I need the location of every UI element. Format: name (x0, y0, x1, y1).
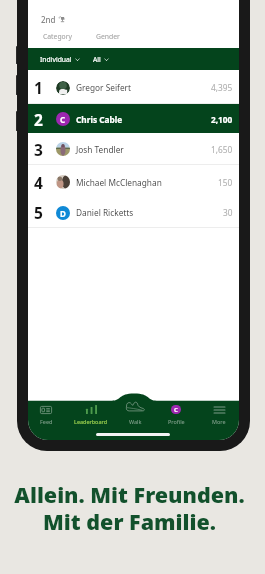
staticText: Daniel Ricketts (76, 207, 134, 218)
button[interactable]: More (198, 395, 239, 440)
staticText: 30 (223, 207, 233, 218)
staticText: Mit der Familie. (43, 507, 216, 536)
staticText: Profile (168, 418, 185, 425)
button[interactable]: Gender (96, 32, 120, 41)
other: Walk (126, 402, 145, 411)
other: More (214, 406, 225, 414)
button[interactable]: Profile (155, 395, 197, 440)
button[interactable]: 5 (28, 197, 239, 228)
other: Leaderboard (86, 405, 97, 414)
staticText: Walk (129, 418, 142, 425)
button[interactable]: Feed (28, 395, 67, 440)
staticText: 4,395 (211, 82, 233, 93)
staticText: 3 (34, 139, 43, 160)
staticText: More (212, 418, 226, 425)
button[interactable]: Individual (40, 55, 80, 64)
staticText: C (174, 406, 178, 414)
staticText: Chris Cable (76, 114, 123, 125)
other: Profile (171, 405, 181, 414)
staticText: Feed (40, 418, 53, 425)
other: Feed (40, 406, 52, 414)
staticText: 2,100 (211, 114, 233, 125)
staticText: 5 (34, 202, 43, 223)
staticText: C (60, 114, 66, 125)
staticText: 4 (34, 172, 43, 193)
staticText: Leaderboard (74, 418, 108, 425)
button[interactable]: 3 (28, 133, 239, 165)
button[interactable]: All (93, 55, 109, 64)
button[interactable]: Walk (114, 395, 156, 440)
staticText: Individual (40, 55, 72, 64)
staticText: 1 (34, 77, 43, 98)
button[interactable]: Leaderboard (70, 395, 112, 440)
button[interactable]: 2 (28, 104, 239, 134)
button[interactable]: Category (43, 32, 72, 41)
button[interactable]: 4 (28, 166, 239, 198)
staticText: All (93, 55, 101, 64)
staticText: 1,650 (211, 144, 233, 155)
staticText: 150 (218, 177, 233, 188)
staticText: 2nd (41, 14, 56, 25)
staticText: 2 (34, 109, 43, 130)
staticText: Allein. Mit Freunden. (14, 480, 245, 509)
staticText: Josh Tendler (76, 144, 124, 155)
staticText: Michael McClenaghan (76, 177, 162, 188)
staticText: Gregor Seifert (76, 82, 132, 93)
staticText: D (60, 208, 66, 219)
button[interactable]: 1 (28, 71, 239, 104)
